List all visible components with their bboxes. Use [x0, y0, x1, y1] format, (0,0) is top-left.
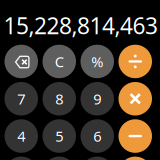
button[interactable]: 9: [80, 82, 114, 115]
button[interactable]: 6: [80, 119, 114, 153]
staticText: 5: [55, 126, 63, 146]
button[interactable]: Multiply: [118, 82, 152, 115]
staticText: 7: [17, 89, 25, 108]
button[interactable]: 3: [80, 157, 114, 160]
staticText: 4: [17, 126, 25, 146]
button[interactable]: C: [42, 45, 76, 78]
button[interactable]: Delete: [4, 45, 38, 78]
button[interactable]: 8: [42, 82, 76, 115]
button[interactable]: Subtract: [118, 119, 152, 153]
button[interactable]: 7: [4, 82, 38, 115]
button[interactable]: %: [80, 45, 114, 78]
button[interactable]: 2: [42, 157, 76, 160]
button[interactable]: 1: [4, 157, 38, 160]
staticText: 8: [55, 89, 63, 108]
staticText: C: [55, 52, 64, 71]
button[interactable]: 4: [4, 119, 38, 153]
staticText: 9: [93, 89, 101, 108]
button[interactable]: Divide: [118, 45, 152, 78]
staticText: 15,228,814,463: [3, 10, 158, 40]
button[interactable]: 5: [42, 119, 76, 153]
staticText: %: [91, 52, 103, 71]
staticText: 6: [93, 126, 101, 146]
button[interactable]: Add: [118, 157, 152, 160]
